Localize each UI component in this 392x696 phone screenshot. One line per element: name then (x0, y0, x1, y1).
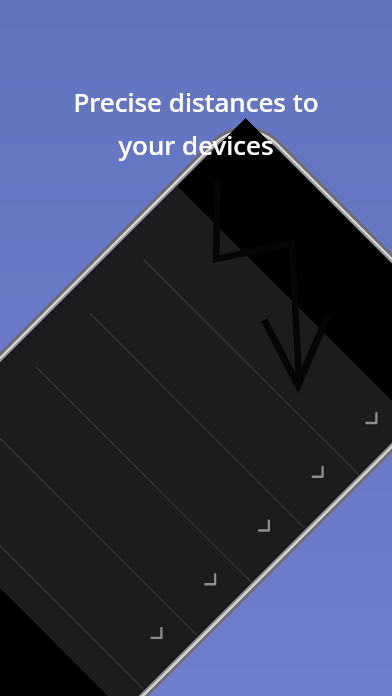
staticText: your devices (118, 127, 274, 162)
staticText: Precise distances to (73, 84, 319, 119)
other: Arrow pointing to device list (0, 0, 392, 696)
